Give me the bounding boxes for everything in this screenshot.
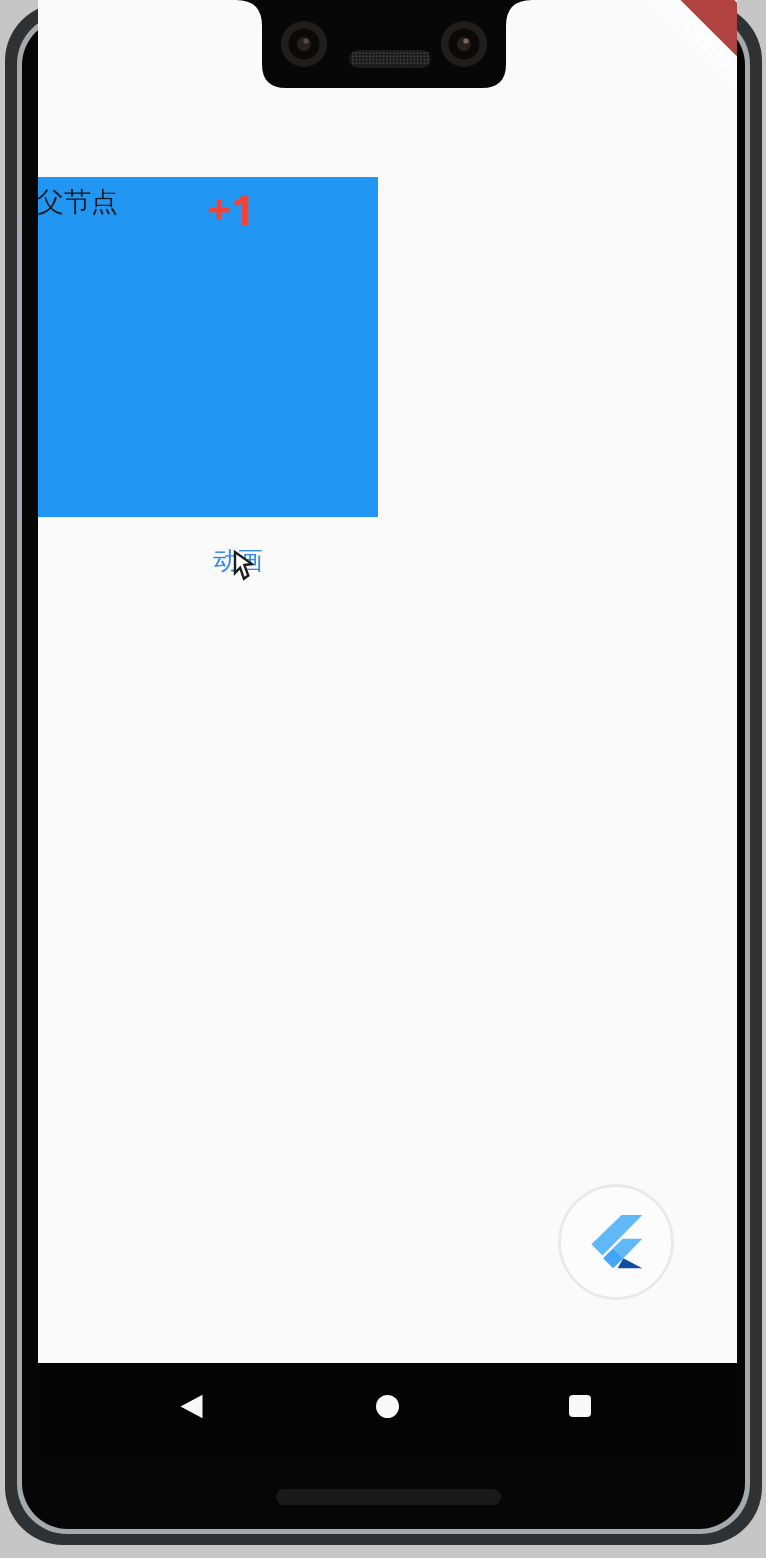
staticText: +1 [207,180,256,237]
button[interactable]: Home [356,1375,418,1437]
button[interactable]: Flutter action [558,1184,674,1300]
staticText: 父节点 [37,185,118,219]
button[interactable]: 父节点 [38,177,378,517]
button[interactable]: Back [160,1375,222,1437]
staticText: 动画 [213,545,263,576]
button[interactable]: Recent apps [549,1375,611,1437]
staticText: DEBUG [679,16,737,74]
button[interactable]: 动画 [184,532,292,588]
